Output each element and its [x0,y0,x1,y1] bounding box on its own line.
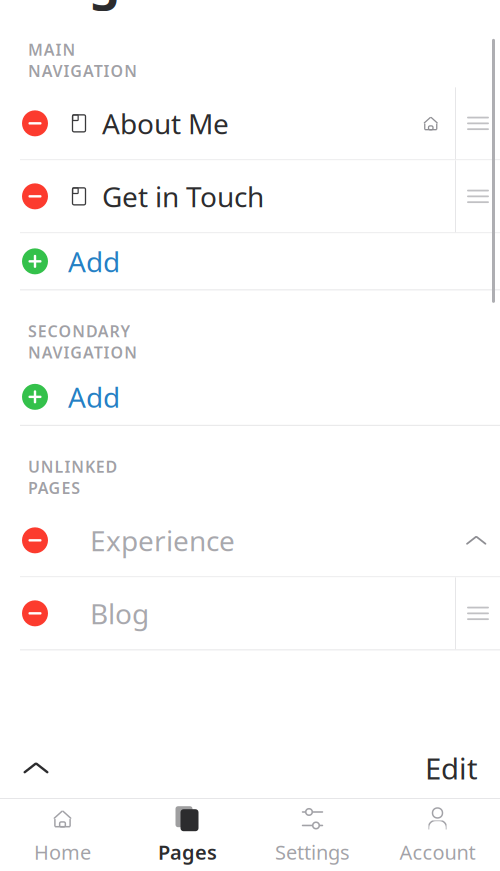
staticText: SECONDARY NAVIGATION [28,320,137,363]
button[interactable]: About Me [0,87,500,159]
staticText: Settings [275,839,350,865]
button[interactable]: Edit [403,732,500,803]
staticText: About Me [102,105,229,142]
button[interactable]: Settings [250,797,375,871]
button[interactable]: Pages [125,797,250,871]
button[interactable]: Collapse [0,742,72,794]
button[interactable]: Get in Touch [0,160,500,232]
button[interactable]: Blog [0,577,500,649]
staticText: MAIN NAVIGATION [28,39,137,81]
button[interactable]: Add [0,233,500,289]
staticText: UNLINKED PAGES [28,456,118,498]
staticText: Account [399,839,475,865]
button[interactable]: Account [375,797,500,871]
staticText: Home [34,839,91,865]
staticText: Add [68,243,120,280]
staticText: Blog [90,595,149,632]
staticText: Pages [28,0,174,13]
staticText: Edit [425,748,478,787]
staticText: Add [68,378,120,415]
staticText: Pages [158,839,217,865]
button[interactable]: Add [0,369,500,425]
button[interactable]: Experience [0,504,500,576]
staticText: Get in Touch [102,178,264,215]
button[interactable]: Home [0,797,125,871]
staticText: Experience [90,522,235,559]
